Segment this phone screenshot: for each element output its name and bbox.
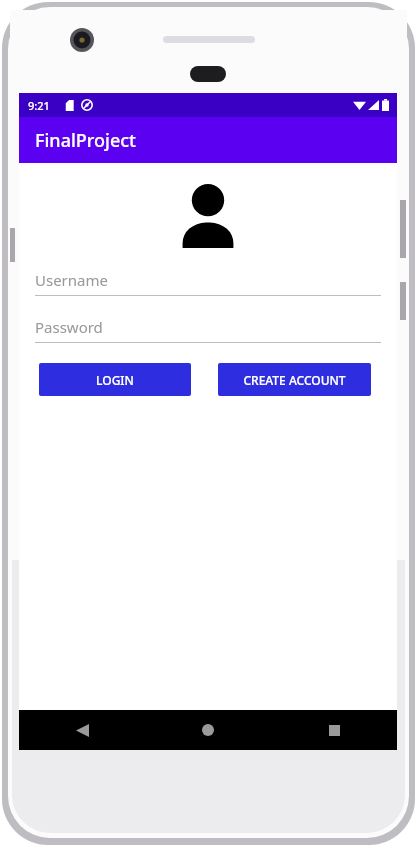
staticText: 9:21 — [28, 98, 50, 113]
button[interactable]: Home — [145, 710, 271, 750]
staticText: CREATE ACCOUNT — [243, 372, 346, 388]
button[interactable]: Password — [35, 317, 381, 343]
button[interactable]: Recent apps — [271, 710, 397, 750]
button[interactable]: CREATE ACCOUNT — [218, 363, 371, 396]
button[interactable]: Back — [19, 710, 145, 750]
staticText: LOGIN — [96, 372, 134, 388]
staticText: Password — [35, 317, 103, 337]
staticText: FinalProject — [35, 128, 136, 153]
button[interactable]: Username — [35, 270, 381, 296]
staticText: Username — [35, 270, 108, 290]
button[interactable]: LOGIN — [39, 363, 191, 396]
